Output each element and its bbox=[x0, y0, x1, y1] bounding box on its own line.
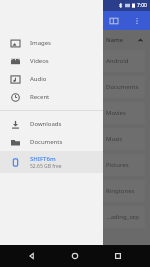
staticText: 52.65 GB free bbox=[30, 163, 62, 170]
button[interactable]: Downloads bbox=[0, 115, 103, 133]
staticText: SHIFT6m bbox=[30, 155, 56, 163]
button[interactable]: Pictures bbox=[102, 154, 145, 176]
button[interactable]: Audio bbox=[0, 70, 103, 88]
staticText: Downloads bbox=[30, 120, 62, 128]
button[interactable]: …ading_otp bbox=[102, 206, 145, 228]
staticText: Pictures bbox=[106, 161, 129, 169]
staticText: Android bbox=[106, 57, 129, 65]
button[interactable]: Home bbox=[64, 245, 86, 267]
button[interactable]: Images bbox=[0, 34, 103, 52]
staticText: Music bbox=[106, 135, 123, 143]
staticText: Audio bbox=[30, 75, 47, 83]
button[interactable]: Music bbox=[102, 128, 145, 150]
button[interactable]: Recent bbox=[0, 88, 103, 106]
button[interactable]: More options bbox=[130, 14, 144, 28]
button[interactable]: Ringtones bbox=[102, 180, 145, 202]
staticText: Documents bbox=[106, 83, 139, 91]
button[interactable]: SHIFT6m bbox=[0, 151, 103, 173]
staticText: …ading_otp bbox=[106, 213, 139, 221]
button[interactable]: Recents bbox=[107, 245, 129, 267]
staticText: Movies bbox=[106, 109, 126, 117]
button[interactable]: Back bbox=[21, 245, 43, 267]
staticText: Ringtones bbox=[106, 187, 135, 195]
button[interactable]: Movies bbox=[102, 102, 145, 124]
staticText: Recent bbox=[30, 93, 50, 101]
button[interactable]: Android bbox=[102, 50, 145, 72]
staticText: Name bbox=[106, 36, 124, 44]
staticText: Images bbox=[30, 39, 51, 47]
button[interactable]: Documents bbox=[0, 133, 103, 151]
staticText: Videos bbox=[30, 57, 49, 65]
button[interactable]: Videos bbox=[0, 52, 103, 70]
button[interactable]: Documents bbox=[102, 76, 145, 98]
staticText: 7:00 bbox=[137, 2, 147, 9]
button[interactable]: Grid view bbox=[107, 14, 121, 28]
staticText: Documents bbox=[30, 138, 63, 146]
